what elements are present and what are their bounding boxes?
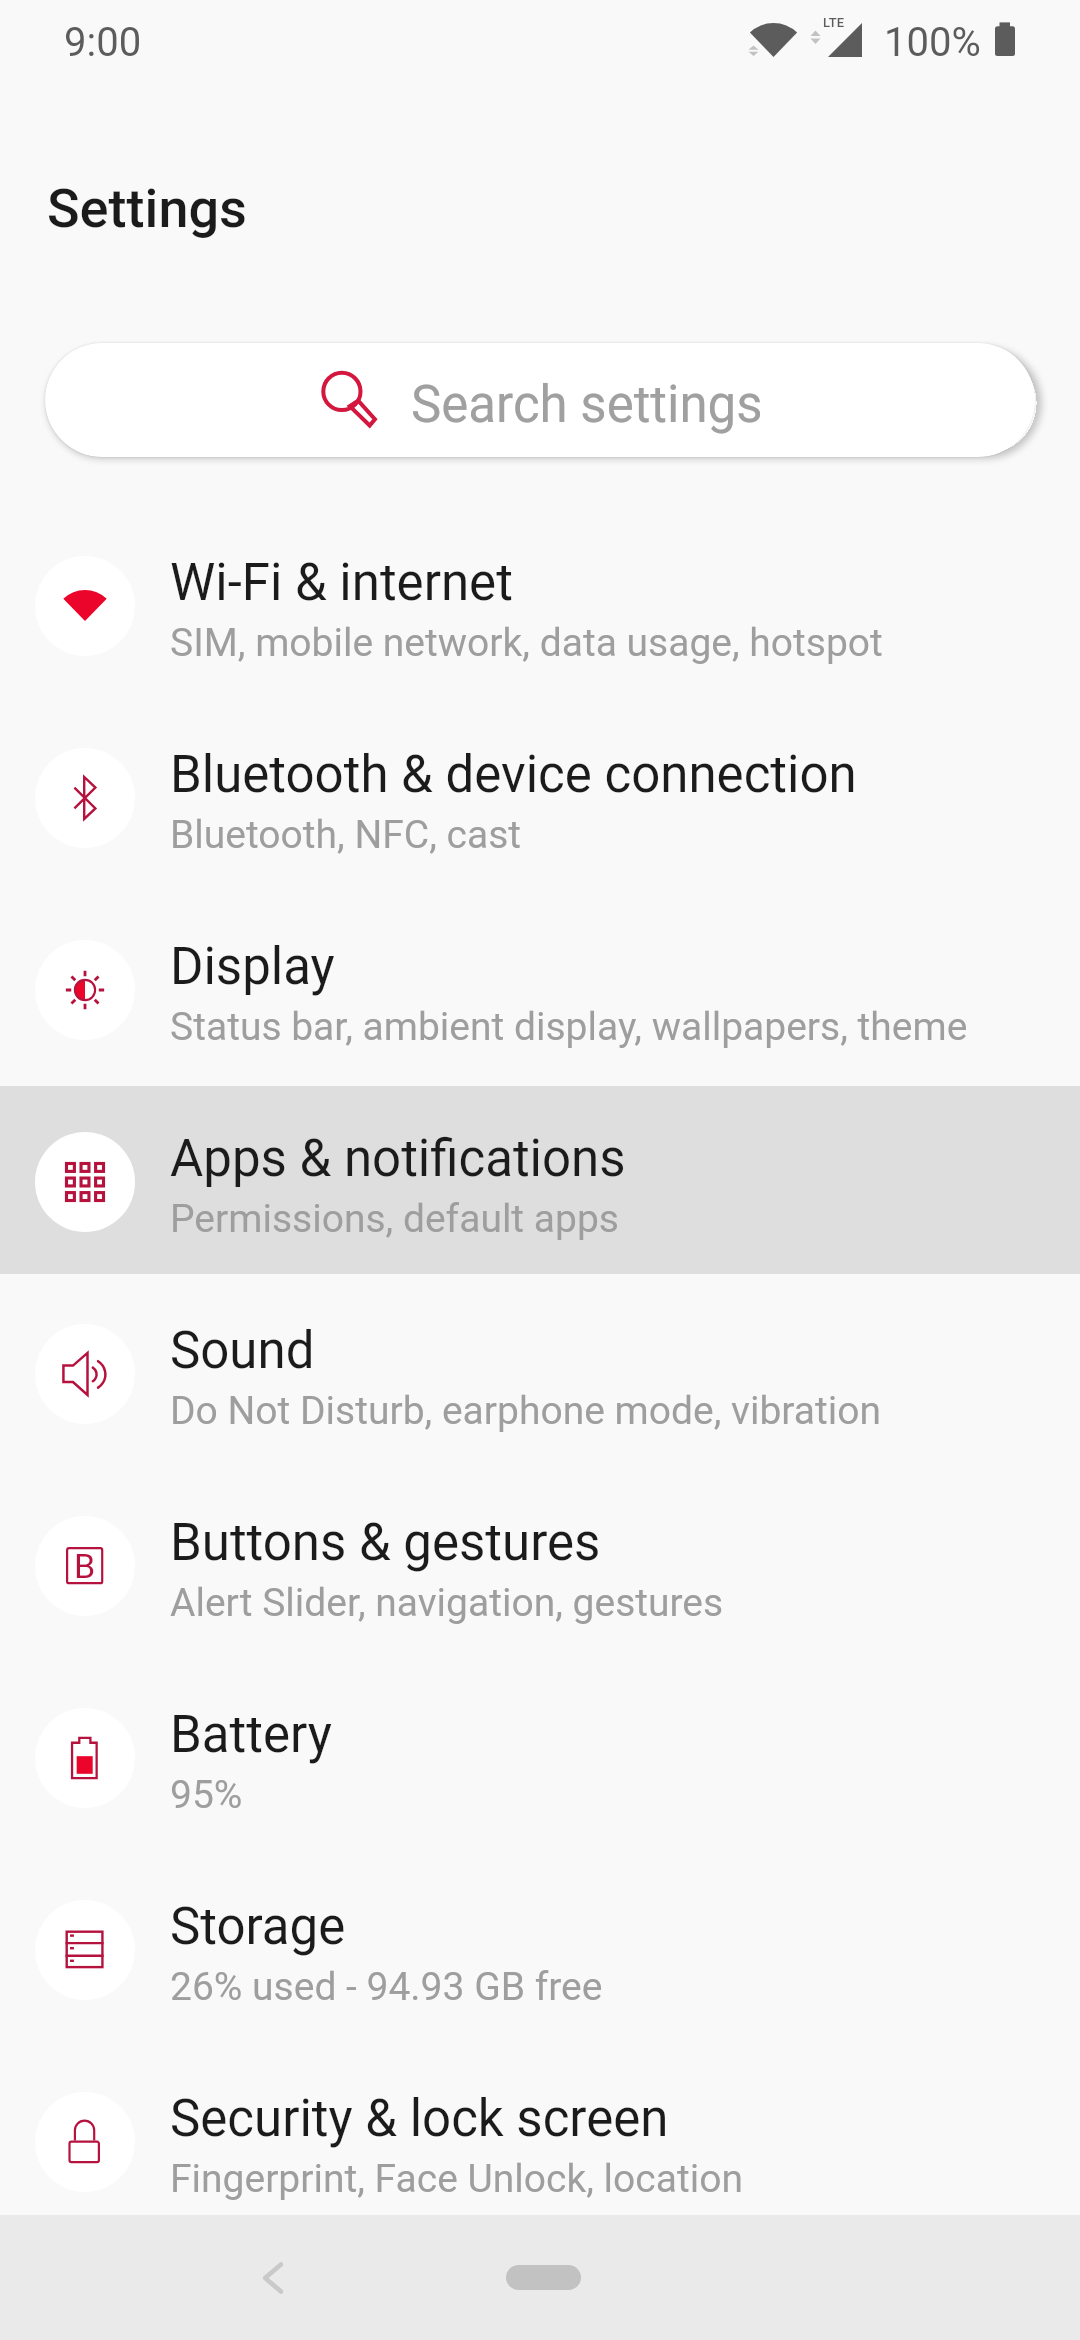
staticText: Permissions, default apps: [170, 1196, 619, 1242]
staticText: Display: [170, 937, 335, 997]
button[interactable]: Display: [0, 894, 1080, 1086]
staticText: 9:00: [64, 19, 142, 66]
button[interactable]: Security & lock screen: [0, 2046, 1080, 2238]
button[interactable]: Storage: [0, 1854, 1080, 2046]
button[interactable]: Apps & notifications: [0, 1086, 1080, 1278]
staticText: Battery: [170, 1705, 332, 1765]
button[interactable]: Home: [506, 2265, 581, 2290]
staticText: Alert Slider, navigation, gestures: [170, 1580, 724, 1626]
staticText: Search settings: [411, 375, 763, 435]
staticText: B: [74, 1546, 96, 1586]
staticText: 26% used - 94.93 GB free: [170, 1964, 603, 2010]
button[interactable]: Wi-Fi & internet: [0, 510, 1080, 702]
staticText: Status bar, ambient display, wallpapers,…: [170, 1004, 968, 1050]
staticText: Bluetooth, NFC, cast: [170, 812, 522, 858]
staticText: SIM, mobile network, data usage, hotspot: [170, 620, 883, 666]
staticText: Security & lock screen: [170, 2089, 669, 2149]
staticText: Bluetooth & device connection: [170, 745, 857, 805]
staticText: LTE: [823, 15, 844, 30]
staticText: Storage: [170, 1897, 346, 1957]
staticText: 95%: [170, 1772, 243, 1818]
button[interactable]: Search settings: [45, 343, 1035, 457]
staticText: 100%: [884, 19, 981, 66]
staticText: Do Not Disturb, earphone mode, vibration: [170, 1388, 881, 1434]
staticText: Fingerprint, Face Unlock, location: [170, 2156, 743, 2202]
staticText: Sound: [170, 1321, 315, 1381]
staticText: Settings: [47, 177, 247, 240]
staticText: Wi-Fi & internet: [170, 553, 513, 613]
button[interactable]: Sound: [0, 1278, 1080, 1470]
button[interactable]: Back: [212, 2218, 332, 2338]
button[interactable]: Battery: [0, 1662, 1080, 1854]
staticText: Apps & notifications: [170, 1129, 626, 1189]
staticText: Buttons & gestures: [170, 1513, 601, 1573]
button[interactable]: Bluetooth & device connection: [0, 702, 1080, 894]
button[interactable]: B: [0, 1470, 1080, 1662]
